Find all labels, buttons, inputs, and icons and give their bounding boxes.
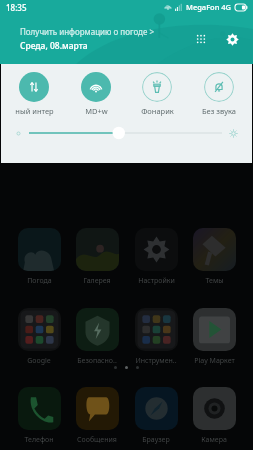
button[interactable] bbox=[29, 126, 222, 140]
staticText: Play Маркет bbox=[194, 356, 235, 366]
staticText: Инструмен.. bbox=[135, 356, 177, 366]
button[interactable]: Сообщения bbox=[70, 387, 124, 445]
button[interactable]: Play Маркет bbox=[187, 308, 241, 366]
staticText: Среда, 08.марта bbox=[20, 40, 88, 52]
button[interactable]: ный интер bbox=[6, 72, 62, 116]
button[interactable]: Темы bbox=[187, 228, 241, 286]
staticText: Темы bbox=[205, 276, 224, 286]
staticText: Получить информацию о погоде > bbox=[20, 26, 154, 37]
staticText: Галерея bbox=[83, 276, 111, 286]
button[interactable]: Камера bbox=[187, 387, 241, 445]
button[interactable]: Фонарик bbox=[129, 72, 185, 116]
staticText: Google bbox=[27, 356, 51, 366]
staticText: Камера bbox=[201, 435, 227, 445]
staticText: Сообщения bbox=[77, 435, 117, 445]
button[interactable]: MD+w bbox=[68, 72, 124, 116]
staticText: Настройки bbox=[138, 276, 175, 286]
button[interactable]: Погода bbox=[12, 228, 66, 286]
staticText: MegaFon 4G bbox=[186, 2, 232, 12]
button[interactable]: Браузер bbox=[129, 387, 183, 445]
staticText: Безопасно.. bbox=[77, 356, 117, 366]
button[interactable]: Безопасно.. bbox=[70, 308, 124, 366]
staticText: Погода bbox=[27, 276, 52, 286]
button[interactable]: Settings bbox=[221, 28, 243, 50]
button[interactable]: Без звука bbox=[191, 72, 247, 116]
button[interactable]: Edit toggles bbox=[191, 29, 211, 49]
staticText: Без звука bbox=[202, 106, 236, 116]
staticText: Браузер bbox=[142, 435, 170, 445]
staticText: Фонарик bbox=[141, 106, 174, 116]
button[interactable]: Телефон bbox=[12, 387, 66, 445]
button[interactable]: Настройки bbox=[129, 228, 183, 286]
staticText: Телефон bbox=[24, 435, 54, 445]
staticText: MD+w bbox=[85, 106, 108, 116]
button[interactable]: Google bbox=[12, 308, 66, 366]
button[interactable]: Галерея bbox=[70, 228, 124, 286]
button[interactable]: Получить информацию о погоде > bbox=[20, 26, 154, 52]
button[interactable]: Инструмен.. bbox=[129, 308, 183, 366]
staticText: ный интер bbox=[15, 106, 54, 116]
staticText: 18:35 bbox=[6, 2, 27, 13]
